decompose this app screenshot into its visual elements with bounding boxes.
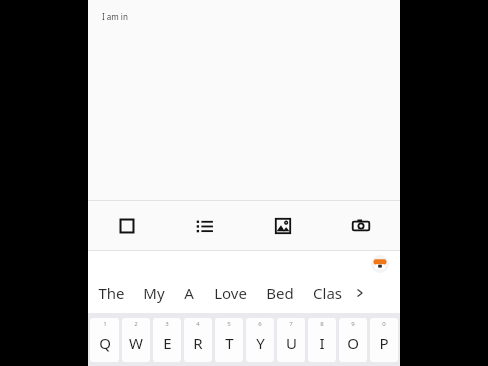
button[interactable]: A	[174, 279, 204, 307]
button[interactable]: Emoji sticker	[371, 255, 389, 273]
staticText: 1	[103, 320, 107, 328]
staticText: I am in	[102, 11, 128, 22]
button[interactable]: 7	[277, 318, 305, 362]
button[interactable]: I am in	[88, 0, 400, 200]
staticText: P	[379, 333, 389, 353]
button[interactable]: More suggestions	[350, 280, 372, 306]
button[interactable]: 6	[246, 318, 274, 362]
button[interactable]: Clas	[304, 279, 350, 307]
staticText: Clas	[313, 283, 342, 303]
staticText: 2	[134, 320, 138, 328]
button[interactable]: 3	[153, 318, 181, 362]
button[interactable]: 2	[122, 318, 150, 362]
staticText: O	[347, 333, 359, 353]
staticText: Q	[99, 333, 111, 353]
staticText: W	[129, 333, 143, 353]
staticText: 4	[196, 320, 200, 328]
staticText: 3	[165, 320, 169, 328]
staticText: T	[225, 333, 234, 353]
button[interactable]: 1	[90, 318, 119, 362]
button[interactable]: 0	[370, 318, 398, 362]
button[interactable]: Camera	[322, 201, 400, 250]
staticText: I	[319, 333, 325, 353]
staticText: My	[143, 283, 165, 303]
button[interactable]: Love	[204, 279, 256, 307]
button[interactable]: 5	[215, 318, 243, 362]
staticText: R	[193, 333, 203, 353]
staticText: U	[286, 333, 297, 353]
button[interactable]: Bed	[256, 279, 304, 307]
staticText: 5	[227, 320, 231, 328]
staticText: 6	[258, 320, 262, 328]
staticText: 0	[382, 320, 386, 328]
staticText: Bed	[266, 283, 294, 303]
button[interactable]: 9	[339, 318, 367, 362]
button[interactable]: The	[88, 279, 134, 307]
button[interactable]: My	[134, 279, 174, 307]
staticText: 8	[320, 320, 324, 328]
button[interactable]: List	[166, 201, 244, 250]
button[interactable]: Photos	[244, 201, 322, 250]
staticText: Love	[214, 283, 247, 303]
staticText: E	[163, 333, 172, 353]
staticText: A	[184, 283, 194, 303]
staticText: 7	[289, 320, 293, 328]
staticText: Y	[256, 333, 265, 353]
button[interactable]: 4	[184, 318, 212, 362]
staticText: 9	[351, 320, 355, 328]
button[interactable]: Draw square	[88, 201, 166, 250]
staticText: The	[98, 283, 125, 303]
button[interactable]: 8	[308, 318, 336, 362]
